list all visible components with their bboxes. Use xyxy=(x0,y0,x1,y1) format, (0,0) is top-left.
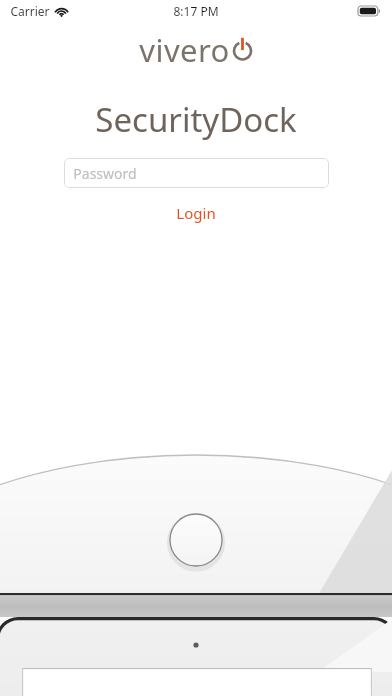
button[interactable]: Login xyxy=(158,199,234,227)
staticText: Password xyxy=(73,164,137,183)
staticText: vivero xyxy=(139,29,230,71)
button[interactable]: Password xyxy=(64,158,329,188)
staticText: Login xyxy=(176,203,216,223)
staticText: SecurityDock xyxy=(95,97,297,142)
staticText: 8:17 PM xyxy=(173,3,219,19)
staticText: Carrier xyxy=(10,3,50,19)
